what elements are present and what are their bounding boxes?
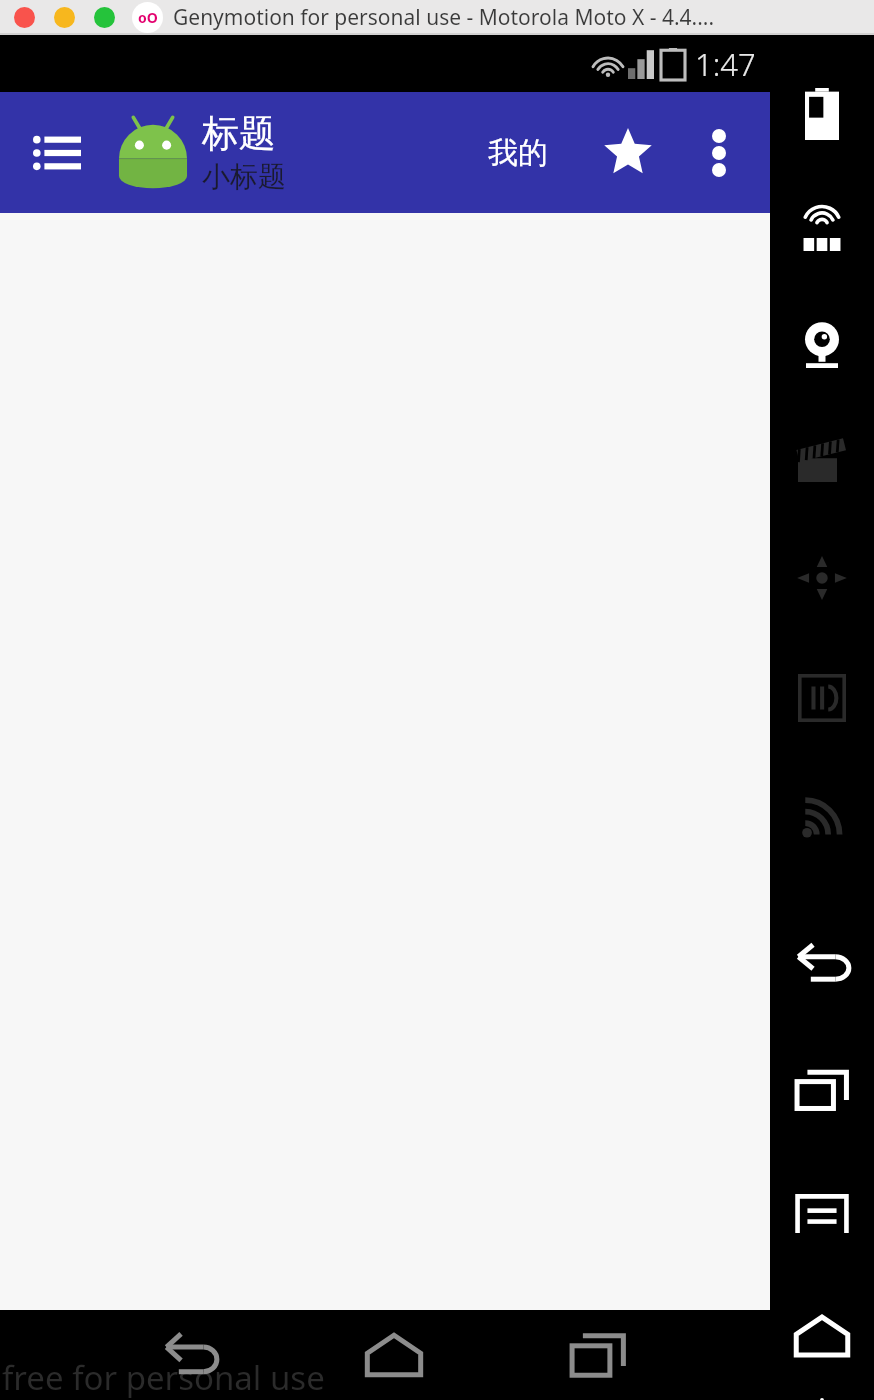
button[interactable]: Home bbox=[351, 1312, 437, 1398]
button[interactable]: Favorite bbox=[592, 117, 664, 189]
staticText: 我的 bbox=[488, 134, 548, 172]
button[interactable]: Recent apps bbox=[555, 1312, 641, 1398]
button[interactable]: Screen recorder bbox=[774, 429, 870, 491]
staticText: free for personal use bbox=[2, 1355, 325, 1400]
button[interactable]: Identifiers bbox=[774, 667, 870, 729]
button[interactable]: D-pad bbox=[774, 547, 870, 609]
button[interactable]: Back bbox=[774, 933, 870, 995]
button[interactable]: Network bbox=[774, 785, 870, 847]
button[interactable]: Back bbox=[147, 1312, 233, 1398]
button[interactable]: GPS bbox=[774, 197, 870, 259]
staticText: oO bbox=[138, 8, 158, 27]
button[interactable]: Menu bbox=[774, 1183, 870, 1245]
button[interactable]: Camera bbox=[774, 313, 870, 375]
button[interactable]: Home bbox=[774, 1305, 870, 1367]
staticText: 小标题 bbox=[202, 159, 286, 194]
button[interactable]: Battery bbox=[774, 83, 870, 145]
staticText: 标题 bbox=[202, 110, 276, 157]
staticText: 1:47 bbox=[695, 43, 756, 85]
button[interactable]: Recent apps bbox=[774, 1059, 870, 1121]
staticText: Genymotion for personal use - Motorola M… bbox=[173, 3, 715, 32]
button[interactable]: 我的 bbox=[474, 116, 562, 190]
button[interactable]: Menu bbox=[18, 114, 96, 192]
button[interactable]: More options bbox=[686, 120, 752, 186]
